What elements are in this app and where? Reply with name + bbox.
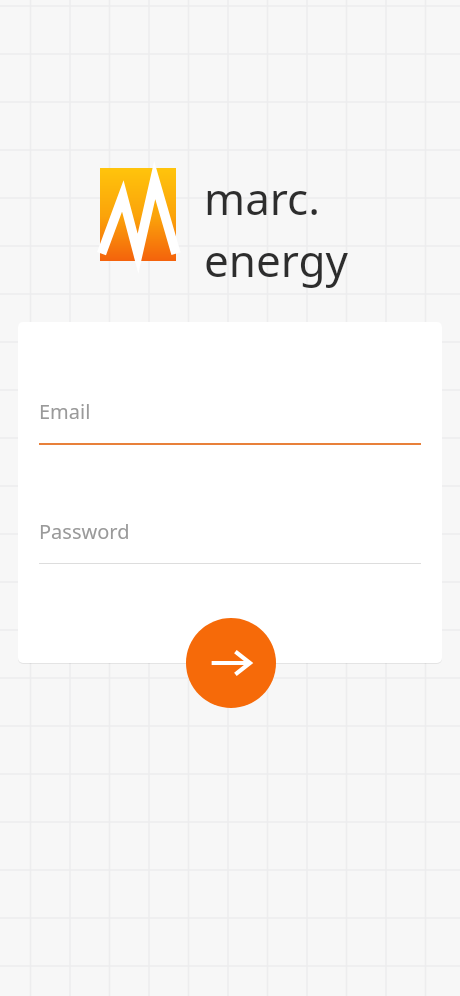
- staticText: energy: [204, 230, 349, 290]
- button[interactable]: Email: [39, 398, 421, 445]
- staticText: Password: [39, 518, 130, 545]
- button[interactable]: Sign in: [186, 618, 276, 708]
- staticText: Email: [39, 398, 91, 425]
- staticText: marc.: [204, 168, 321, 228]
- button[interactable]: Password: [39, 518, 421, 564]
